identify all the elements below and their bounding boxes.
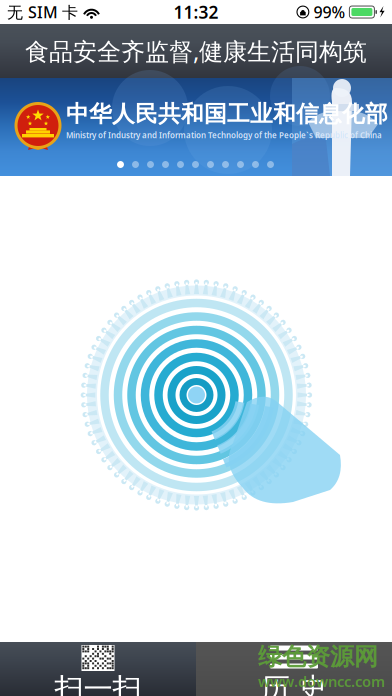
staticText: www.downcc.com bbox=[258, 671, 385, 691]
staticText: Ministry of Industry and Information Tec… bbox=[66, 130, 382, 140]
button[interactable]: 历 史 bbox=[196, 642, 392, 696]
staticText: 历 史 bbox=[260, 671, 327, 696]
staticText: 扫一扫 bbox=[54, 671, 141, 696]
button[interactable]: 扫一扫 bbox=[0, 642, 196, 696]
staticText: 99% bbox=[313, 1, 345, 23]
staticText: 11:32 bbox=[173, 0, 218, 23]
staticText: 无 SIM 卡 bbox=[7, 1, 78, 23]
staticText: 中华人民共和国工业和信息化部 bbox=[66, 100, 388, 128]
staticText: 绿色资源网 bbox=[258, 642, 378, 671]
staticText: 食品安全齐监督,健康生活同构筑 bbox=[25, 35, 367, 67]
